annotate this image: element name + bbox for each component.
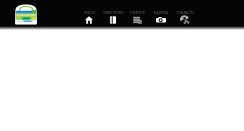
button[interactable]: INICIO [78, 11, 100, 24]
button[interactable]: CONTACTO [174, 11, 196, 24]
button[interactable]: DIRECTORIO [102, 11, 124, 24]
button[interactable]: EVENTOS [126, 11, 148, 24]
staticText: INICIO [84, 11, 95, 15]
staticText: GALERIA [154, 11, 168, 15]
staticText: DIRECTORIO [103, 11, 124, 15]
staticText: CONTACTO [176, 11, 194, 15]
button[interactable]: GALERIA [150, 11, 172, 24]
button[interactable]: Logo, inicio [14, 4, 38, 25]
staticText: EVENTOS [130, 11, 145, 15]
